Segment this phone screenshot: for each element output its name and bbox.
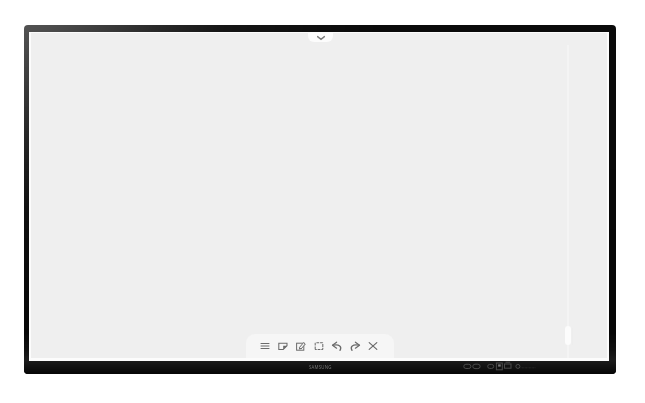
button[interactable]: Edit [292, 334, 310, 358]
button[interactable]: Redo [346, 334, 364, 358]
button[interactable]: Menu [256, 334, 274, 358]
button[interactable]: Close [364, 334, 382, 358]
button[interactable]: Undo [328, 334, 346, 358]
button[interactable]: New page [274, 334, 292, 358]
button[interactable]: Expand menu [308, 33, 333, 42]
button[interactable]: Select [310, 334, 328, 358]
staticText: SAMSUNG [309, 364, 332, 370]
